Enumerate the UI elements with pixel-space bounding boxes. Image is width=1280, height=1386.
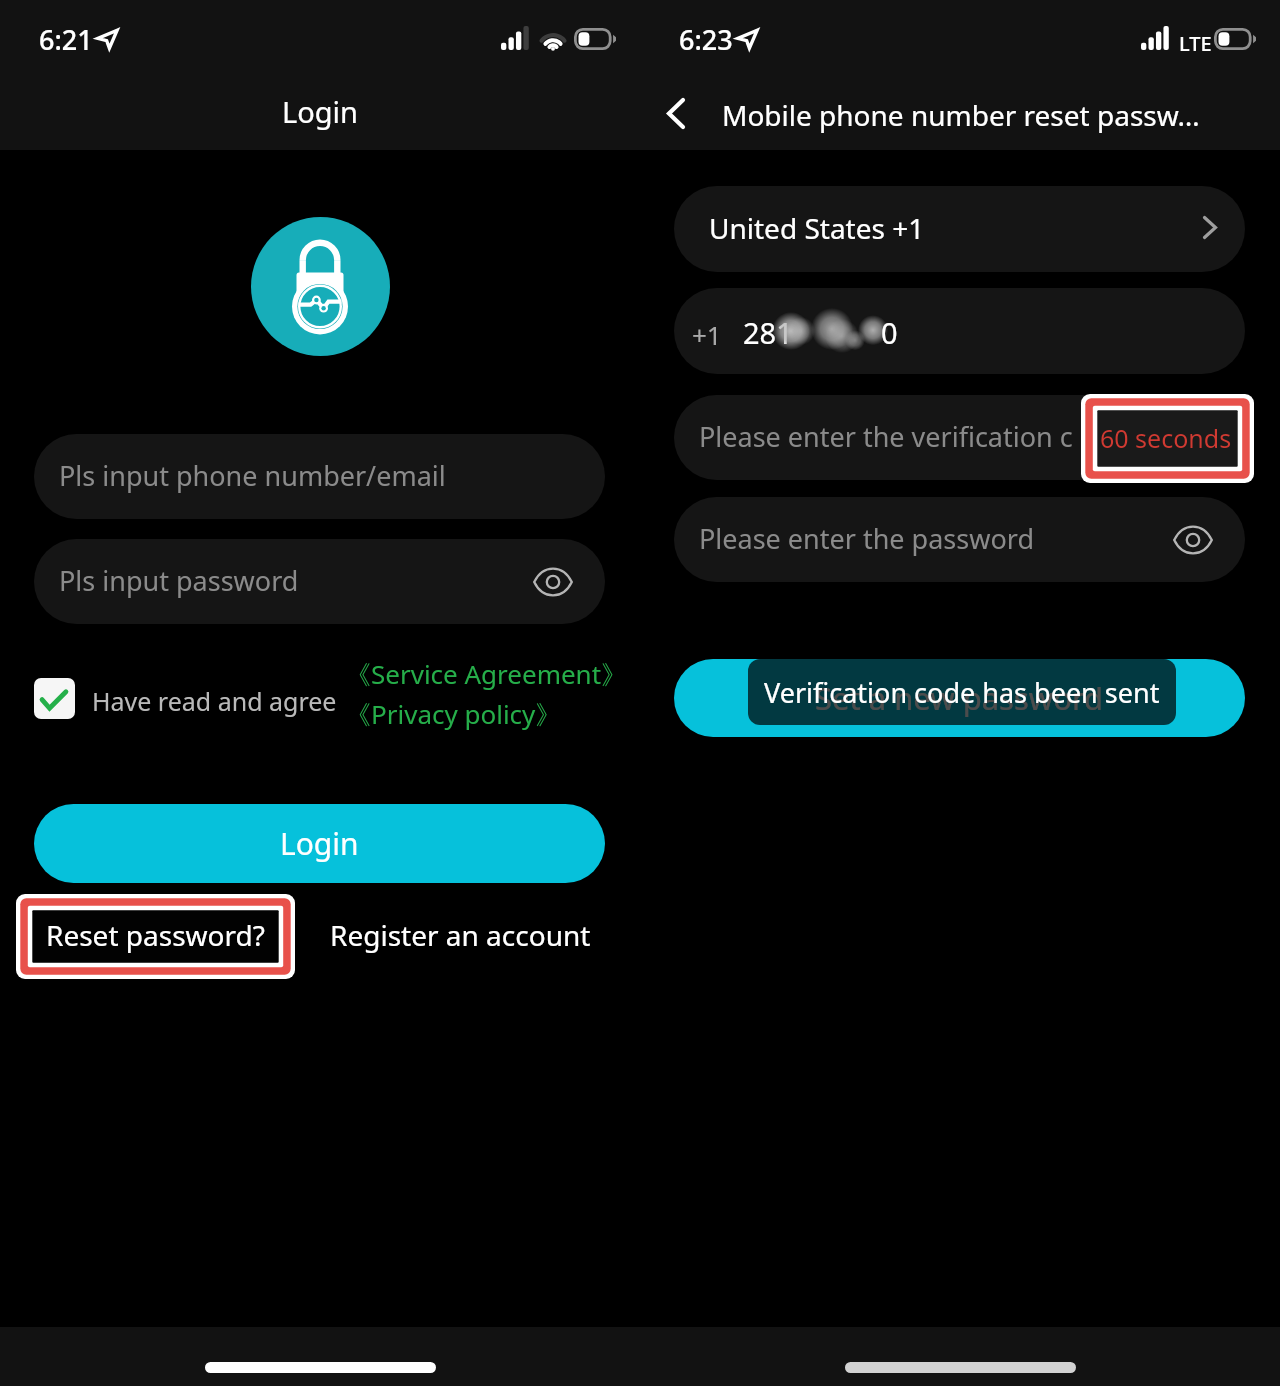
staticText: Have read and agree <box>92 684 337 718</box>
staticText: 0 <box>881 313 898 352</box>
staticText: +1 <box>692 317 722 352</box>
button[interactable]: Show password <box>527 556 579 608</box>
button[interactable] <box>674 288 1245 374</box>
button[interactable]: United States +1 <box>674 186 1245 272</box>
staticText: Please enter the verification c <box>699 418 1073 455</box>
staticText: Login <box>0 92 640 131</box>
button[interactable]: Please enter the password <box>674 497 1245 582</box>
staticText: 281 <box>743 313 793 352</box>
staticText: Register an account <box>330 916 591 954</box>
staticText: Pls input password <box>59 562 299 599</box>
staticText: 6:23 <box>679 21 733 58</box>
staticText: 6:21 <box>39 21 93 58</box>
button[interactable]: Please enter the verification c <box>674 395 1245 480</box>
staticText: Mobile phone number reset passw… <box>722 96 1262 134</box>
staticText: Pls input phone number/email <box>59 457 446 494</box>
button[interactable]: Pls input phone number/email <box>34 434 605 519</box>
staticText: LTE <box>1179 30 1212 57</box>
staticText: Set a new password <box>815 677 1104 719</box>
button[interactable]: Pls input password <box>34 539 605 624</box>
button[interactable] <box>34 678 75 719</box>
staticText: Reset password? <box>46 916 265 954</box>
button[interactable]: Set a new password <box>674 659 1245 737</box>
staticText: Login <box>280 823 359 864</box>
button[interactable]: 《Service Agreement》 <box>345 656 628 692</box>
button[interactable]: Show password <box>1167 514 1219 566</box>
button[interactable]: Register an account <box>316 894 606 979</box>
button[interactable]: Back <box>651 89 700 138</box>
button[interactable]: Reset password? <box>16 894 295 979</box>
button[interactable]: 60 seconds <box>1081 394 1254 483</box>
staticText: Verification code has been sent <box>764 674 1160 711</box>
staticText: 60 seconds <box>1100 421 1232 455</box>
button[interactable]: Login <box>34 804 605 883</box>
staticText: Please enter the password <box>699 520 1034 557</box>
button[interactable]: 《Privacy policy》 <box>345 696 562 732</box>
staticText: United States +1 <box>709 209 925 247</box>
